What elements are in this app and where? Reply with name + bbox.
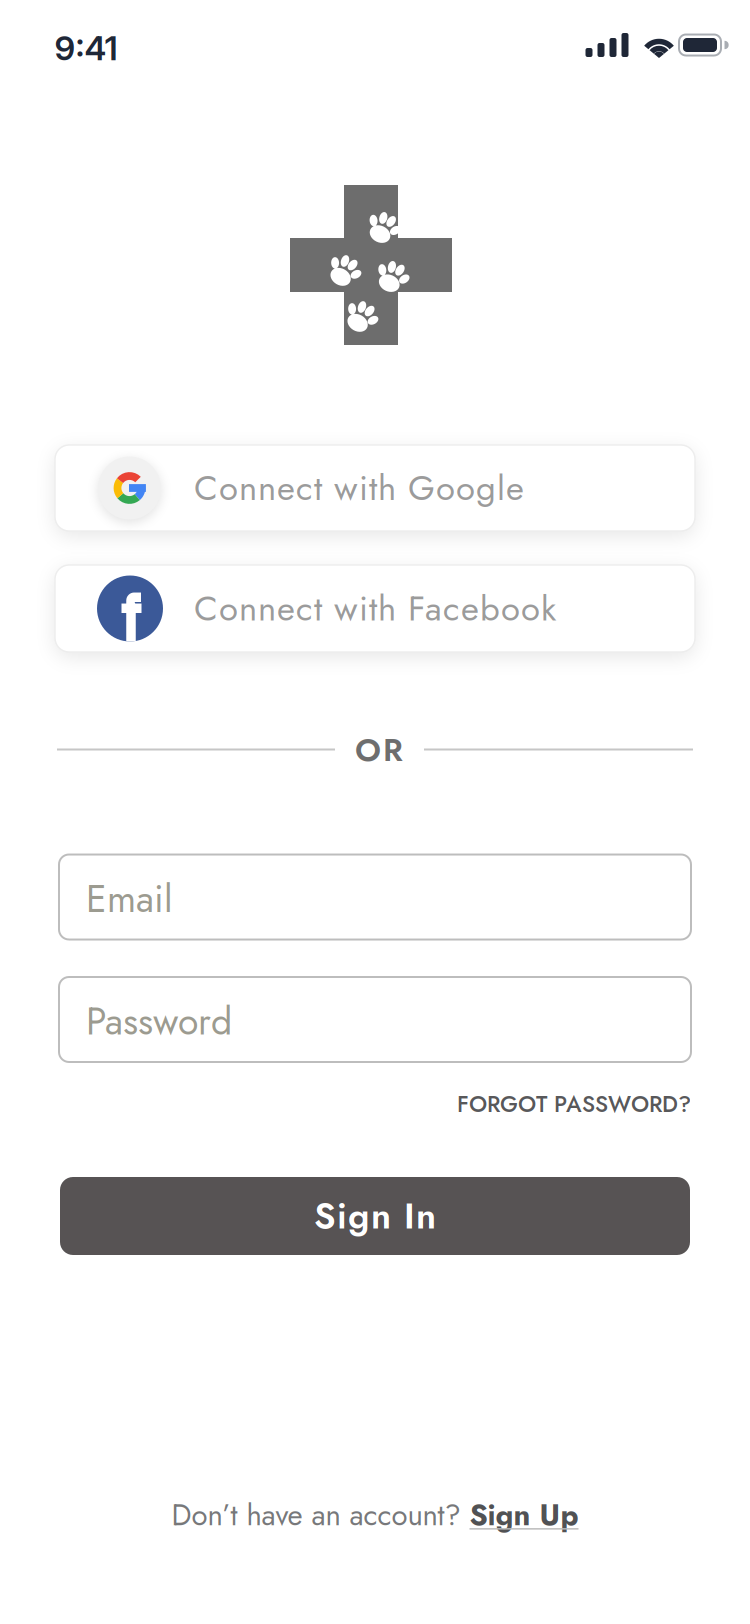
button[interactable]: Connect with Google bbox=[55, 445, 695, 531]
staticText: 9:41 bbox=[54, 28, 117, 68]
textField[interactable]: Email bbox=[86, 872, 691, 926]
button[interactable]: Connect with Facebook bbox=[55, 565, 695, 652]
button[interactable]: Sign In bbox=[60, 1177, 690, 1255]
staticText: Sign Up bbox=[469, 1494, 578, 1536]
button[interactable]: Sign Up bbox=[469, 1494, 578, 1536]
staticText: Sign In bbox=[314, 1190, 436, 1242]
staticText: Password bbox=[86, 994, 232, 1048]
staticText: Don’t have an account? bbox=[171, 1494, 460, 1536]
textField[interactable]: Password bbox=[86, 994, 691, 1048]
staticText: OR bbox=[355, 727, 403, 773]
staticText: FORGOT PASSWORD? bbox=[457, 1088, 691, 1120]
staticText: Email bbox=[86, 872, 173, 926]
staticText: Connect with Google bbox=[194, 463, 524, 513]
button[interactable]: FORGOT PASSWORD? bbox=[457, 1088, 691, 1120]
staticText: Connect with Facebook bbox=[194, 583, 556, 634]
